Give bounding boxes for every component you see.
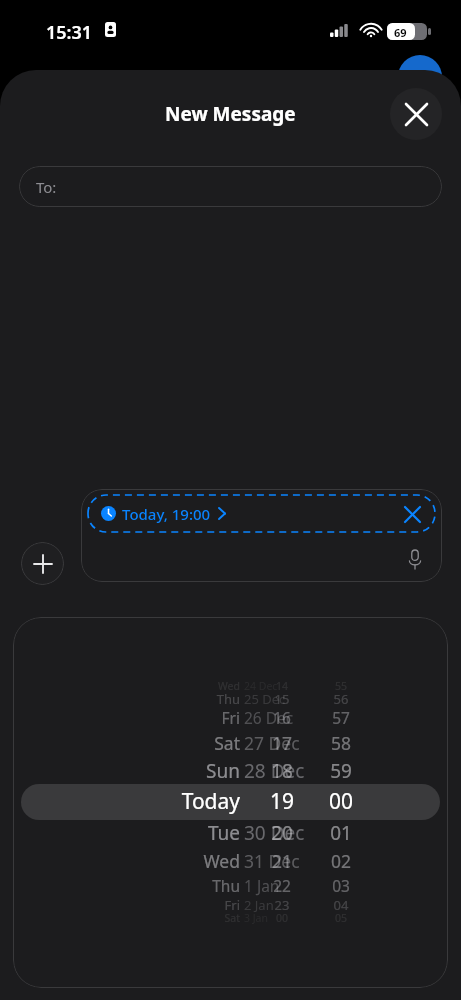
button[interactable]: Dictate [400, 544, 430, 574]
staticText: 2 Jan [244, 896, 324, 914]
staticText: Sun [53, 758, 240, 784]
staticText: 20 [252, 820, 312, 846]
staticText: 58 [311, 731, 371, 755]
staticText: 1 Jan [244, 875, 324, 896]
staticText: 3 Jan [244, 911, 324, 925]
staticText: 21 [252, 849, 312, 873]
staticText: Thu [53, 875, 240, 896]
staticText: 05 [311, 911, 371, 925]
staticText: 24 Dec [244, 679, 324, 693]
staticText: 00 [311, 787, 371, 816]
staticText: 17 [252, 731, 312, 755]
button[interactable] [21, 784, 440, 820]
staticText [244, 787, 324, 816]
staticText: Sat [53, 731, 240, 755]
staticText: 28 Dec [244, 758, 324, 784]
staticText: 55 [311, 679, 371, 693]
staticText: Fri [53, 707, 240, 728]
staticText: 19 [252, 787, 312, 816]
staticText: 02 [311, 849, 371, 873]
staticText: 16 [252, 707, 312, 728]
staticText: 15:31 [46, 20, 93, 45]
staticText: New Message [165, 101, 296, 127]
button[interactable]: Close [390, 88, 442, 140]
staticText: 26 Dec [244, 707, 324, 728]
button[interactable]: Today, 19:00 [81, 489, 442, 582]
staticText: 59 [311, 758, 371, 784]
staticText: Fri [53, 896, 240, 914]
staticText: 56 [311, 690, 371, 708]
staticText: 15 [252, 690, 312, 708]
staticText: 27 Dec [244, 731, 324, 755]
staticText: 18 [252, 758, 312, 784]
staticText: 69 [394, 25, 407, 40]
staticText: Wed [53, 849, 240, 873]
staticText: 57 [311, 707, 371, 728]
staticText: 01 [311, 820, 371, 846]
staticText: 30 Dec [244, 820, 324, 846]
staticText: Tue [53, 820, 240, 846]
staticText: Today [53, 787, 240, 816]
staticText: 14 [252, 679, 312, 693]
staticText: 25 Dec [244, 690, 324, 708]
staticText: 03 [311, 875, 371, 896]
staticText: 23 [252, 896, 312, 914]
staticText: To: [36, 177, 57, 197]
staticText: Today, 19:00 [122, 504, 211, 524]
staticText: 04 [311, 896, 371, 914]
staticText: 31 Dec [244, 849, 324, 873]
staticText: 00 [252, 911, 312, 925]
button[interactable]: To: [19, 166, 442, 207]
button[interactable]: Add attachment [21, 542, 64, 585]
staticText: Thu [53, 690, 240, 708]
button[interactable]: Remove schedule [398, 500, 426, 528]
button[interactable]: Today, 19:00 [88, 495, 435, 532]
staticText: 22 [252, 875, 312, 896]
